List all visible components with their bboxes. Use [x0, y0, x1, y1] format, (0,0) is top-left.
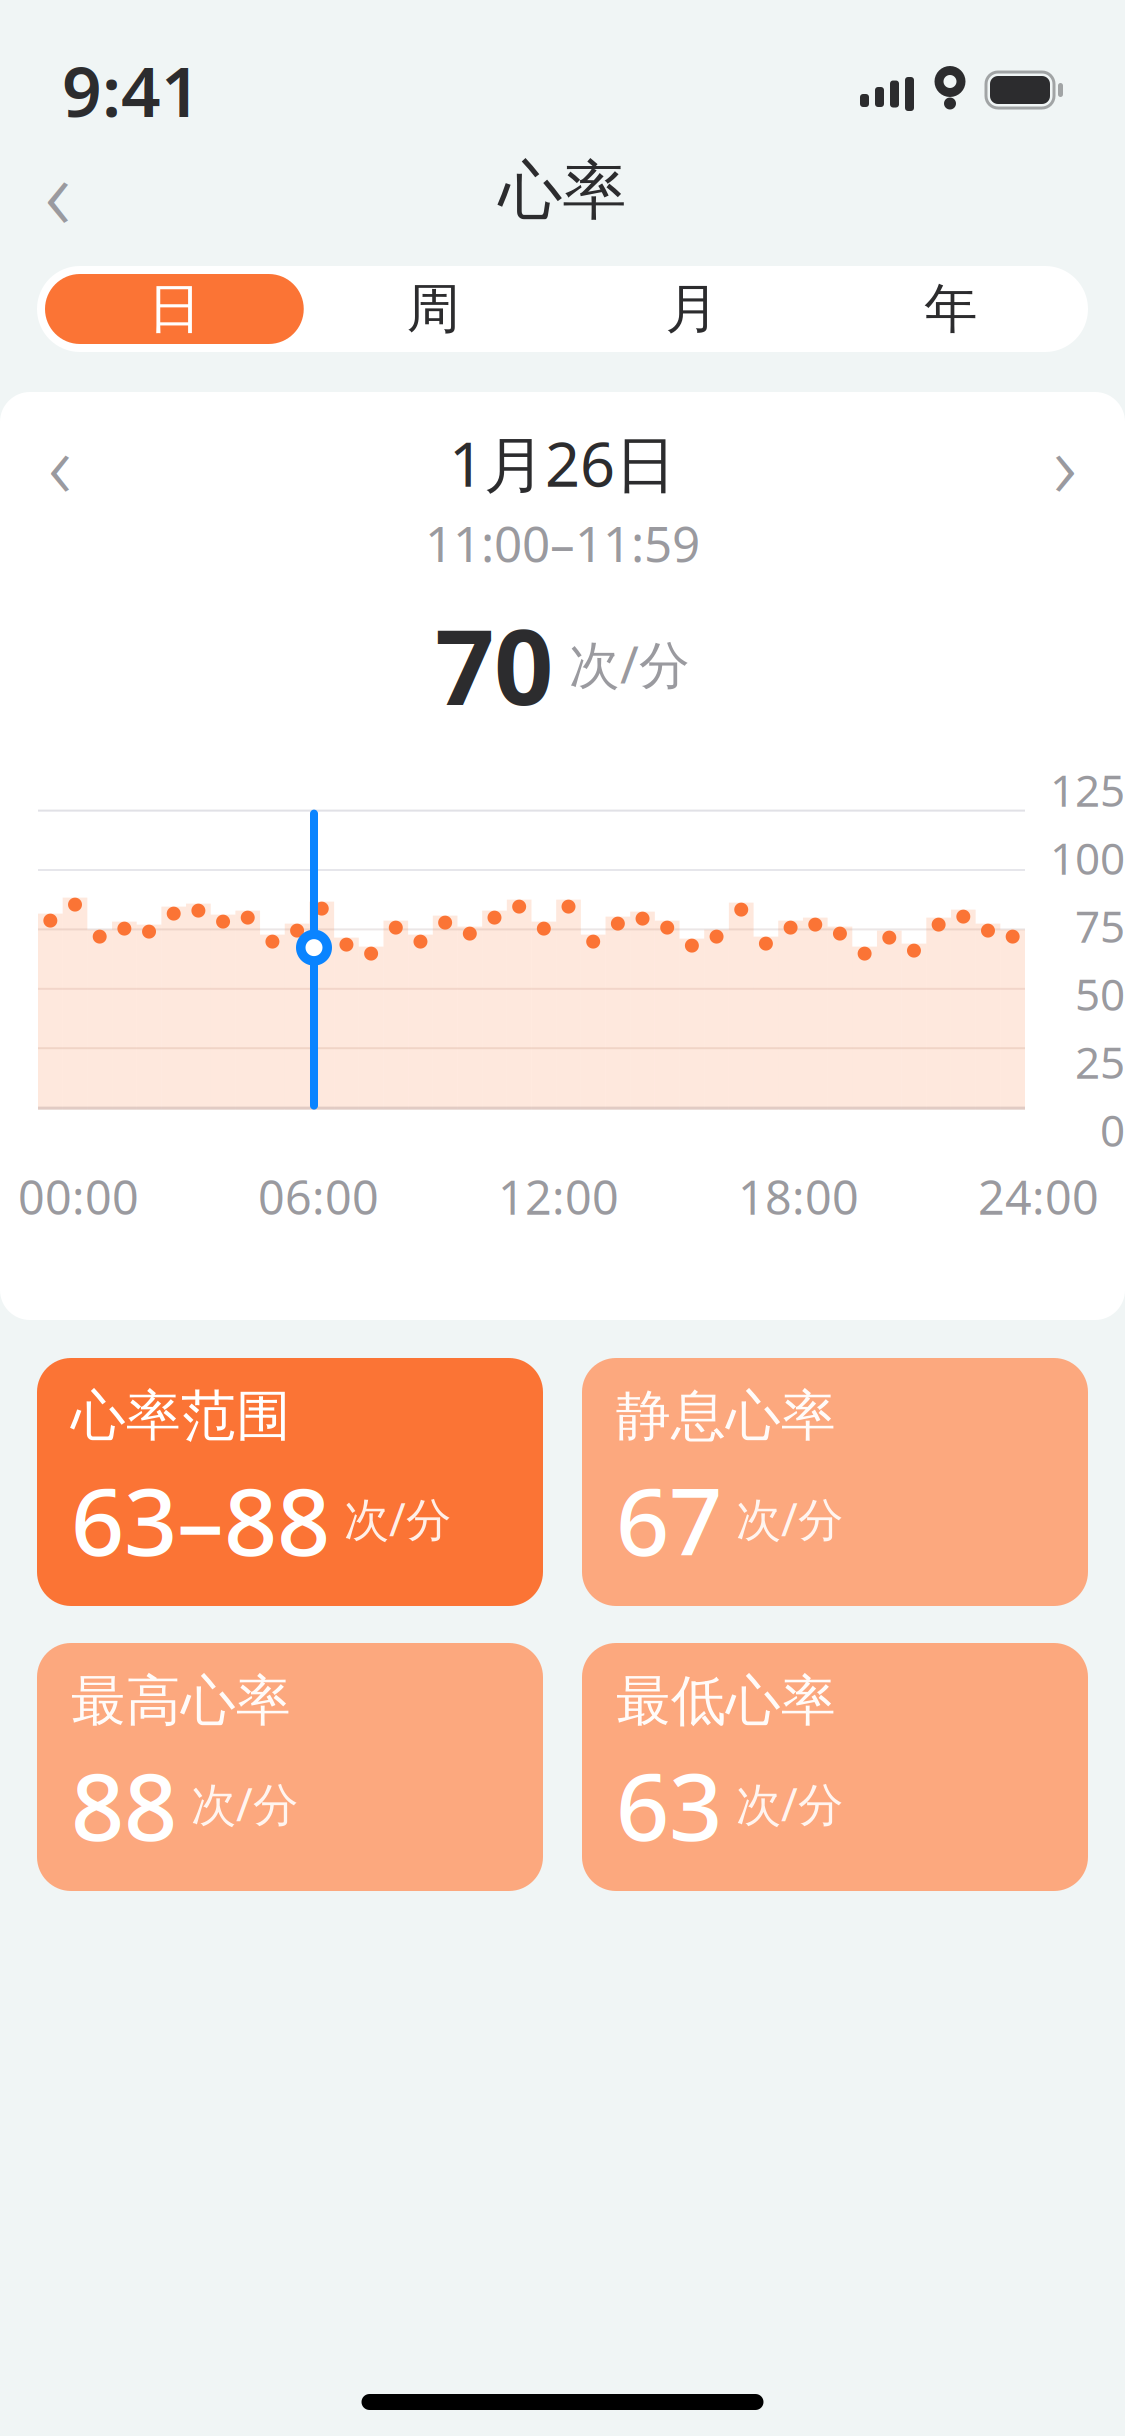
staticText: 25: [1075, 1032, 1125, 1091]
staticText: 24:00: [978, 1166, 1099, 1228]
staticText: 年: [924, 276, 977, 342]
staticText: 88: [71, 1743, 177, 1866]
button[interactable]: 日: [45, 274, 304, 344]
staticText: 0: [1100, 1100, 1125, 1159]
button[interactable]: 周: [304, 274, 563, 344]
staticText: 67: [616, 1458, 722, 1581]
button[interactable]: 最低心率: [582, 1643, 1088, 1891]
staticText: 50: [1075, 964, 1125, 1023]
button[interactable]: 返回: [8, 141, 108, 241]
staticText: 次/分: [569, 630, 690, 698]
staticText: 1月26日: [449, 422, 676, 504]
staticText: 00:00: [18, 1166, 139, 1228]
staticText: 18:00: [738, 1166, 859, 1228]
staticText: 11:00–11:59: [425, 510, 700, 575]
staticText: 100: [1050, 828, 1125, 887]
staticText: 心率范围: [71, 1382, 291, 1450]
staticText: 静息心率: [616, 1382, 836, 1450]
staticText: 日: [148, 276, 201, 342]
staticText: 次/分: [344, 1488, 451, 1549]
button[interactable]: 静息心率: [582, 1358, 1088, 1606]
staticText: 次/分: [736, 1773, 843, 1834]
staticText: 周: [407, 276, 460, 342]
staticText: 次/分: [736, 1488, 843, 1549]
staticText: 最高心率: [71, 1667, 291, 1735]
staticText: ›: [1053, 403, 1077, 523]
button[interactable]: 心率范围: [37, 1358, 543, 1606]
staticText: 70: [435, 595, 553, 734]
staticText: ‹: [44, 124, 71, 258]
button[interactable]: 月: [562, 274, 821, 344]
staticText: 12:00: [498, 1166, 619, 1228]
staticText: 06:00: [258, 1166, 379, 1228]
staticText: ‹: [48, 403, 72, 523]
button[interactable]: 年: [821, 274, 1080, 344]
staticText: 月: [665, 276, 718, 342]
staticText: 63–88: [71, 1458, 330, 1581]
staticText: 75: [1075, 896, 1125, 955]
button[interactable]: 最高心率: [37, 1643, 543, 1891]
staticText: 最低心率: [616, 1667, 836, 1735]
staticText: 125: [1050, 760, 1125, 819]
button[interactable]: 后一天: [1015, 418, 1115, 508]
staticText: 63: [616, 1743, 722, 1866]
staticText: 9:41: [62, 44, 201, 136]
staticText: 次/分: [191, 1773, 298, 1834]
staticText: 心率: [498, 152, 626, 230]
button[interactable]: 前一天: [10, 418, 110, 508]
